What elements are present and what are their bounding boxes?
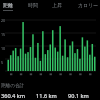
button[interactable]: 距離 xyxy=(3,0,13,11)
button[interactable]: 11.6 km xyxy=(34,92,67,100)
staticText: 5 xyxy=(1,60,4,65)
button[interactable]: 90.1 km xyxy=(67,92,100,100)
staticText: 15 xyxy=(1,32,6,37)
staticText: カロリー xyxy=(78,2,99,8)
staticText: 11.6 km xyxy=(36,92,57,100)
staticText: 360.4 km xyxy=(1,92,25,100)
staticText: 距離の合計 xyxy=(1,83,25,89)
button[interactable]: 上昇 xyxy=(52,0,62,11)
staticText: 20 xyxy=(1,18,6,23)
button[interactable]: カロリー xyxy=(78,0,99,11)
staticText: 10 xyxy=(1,46,6,51)
button[interactable]: 360.4 km xyxy=(0,92,34,100)
staticText: 時間 xyxy=(28,2,38,8)
staticText: 距離 xyxy=(3,2,13,8)
staticText: 90.1 km xyxy=(68,92,89,100)
button[interactable]: 時間 xyxy=(28,0,38,11)
staticText: 上昇 xyxy=(52,2,62,8)
